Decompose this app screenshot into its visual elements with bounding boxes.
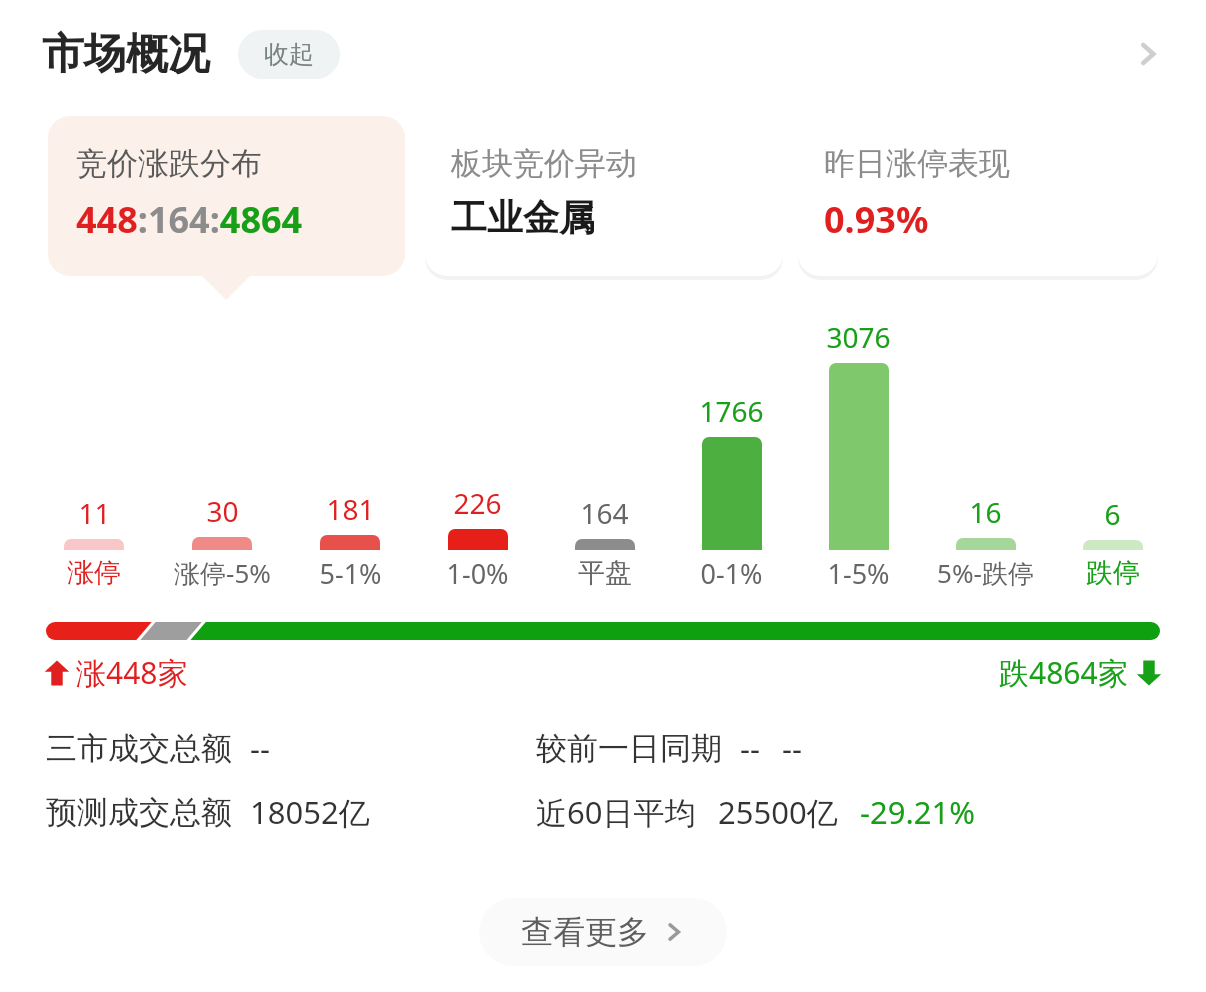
staticText: 1-0%	[446, 555, 509, 592]
staticText: 较前一日同期	[536, 729, 722, 768]
staticText: 0.93%	[824, 195, 929, 244]
staticText: 涨448家	[76, 652, 188, 693]
staticText: 收起	[264, 39, 314, 70]
staticText: 平盘	[578, 556, 632, 590]
staticText: 工业金属	[451, 195, 595, 240]
staticText: 近60日平均	[536, 791, 696, 833]
staticText: 3076	[826, 318, 891, 356]
staticText: 跌停	[1086, 556, 1140, 590]
staticText: 1-5%	[827, 555, 890, 592]
button[interactable]: 竞价涨跌分布	[48, 116, 405, 276]
staticText: 市场概况	[42, 28, 210, 81]
staticText: 16	[969, 493, 1002, 531]
staticText: 25500亿	[718, 791, 838, 833]
staticText: 5-1%	[319, 555, 382, 592]
staticText: 查看更多	[521, 912, 649, 952]
staticText: 30	[206, 492, 239, 530]
staticText: 1766	[699, 392, 764, 430]
staticText: --	[740, 727, 760, 769]
button[interactable]: 查看更多	[479, 898, 727, 966]
button[interactable]: More	[1124, 30, 1172, 78]
button[interactable]: 昨日涨停表现	[798, 116, 1158, 276]
staticText: 181	[326, 490, 375, 528]
staticText: 预测成交总额	[46, 793, 232, 832]
staticText: 昨日涨停表现	[824, 144, 1010, 183]
button[interactable]: 板块竞价异动	[425, 116, 783, 276]
staticText: 6	[1104, 495, 1121, 533]
staticText: 5%-跌停	[937, 555, 1034, 591]
staticText: 448:164:4864	[76, 195, 303, 244]
staticText: 涨停-5%	[174, 555, 271, 591]
staticText: 226	[453, 484, 502, 522]
staticText: 竞价涨跌分布	[76, 144, 262, 183]
staticText: 三市成交总额	[46, 729, 232, 768]
staticText: -29.21%	[860, 791, 975, 833]
staticText: 板块竞价异动	[451, 144, 637, 183]
staticText: 18052亿	[250, 791, 370, 833]
staticText: 涨停	[67, 556, 121, 590]
staticText: 11	[78, 494, 111, 532]
staticText: 跌4864家	[999, 652, 1128, 693]
button[interactable]: 收起	[238, 30, 340, 79]
staticText: --	[782, 727, 802, 769]
staticText: 164	[580, 494, 629, 532]
staticText: --	[250, 727, 270, 769]
staticText: 0-1%	[700, 555, 763, 592]
